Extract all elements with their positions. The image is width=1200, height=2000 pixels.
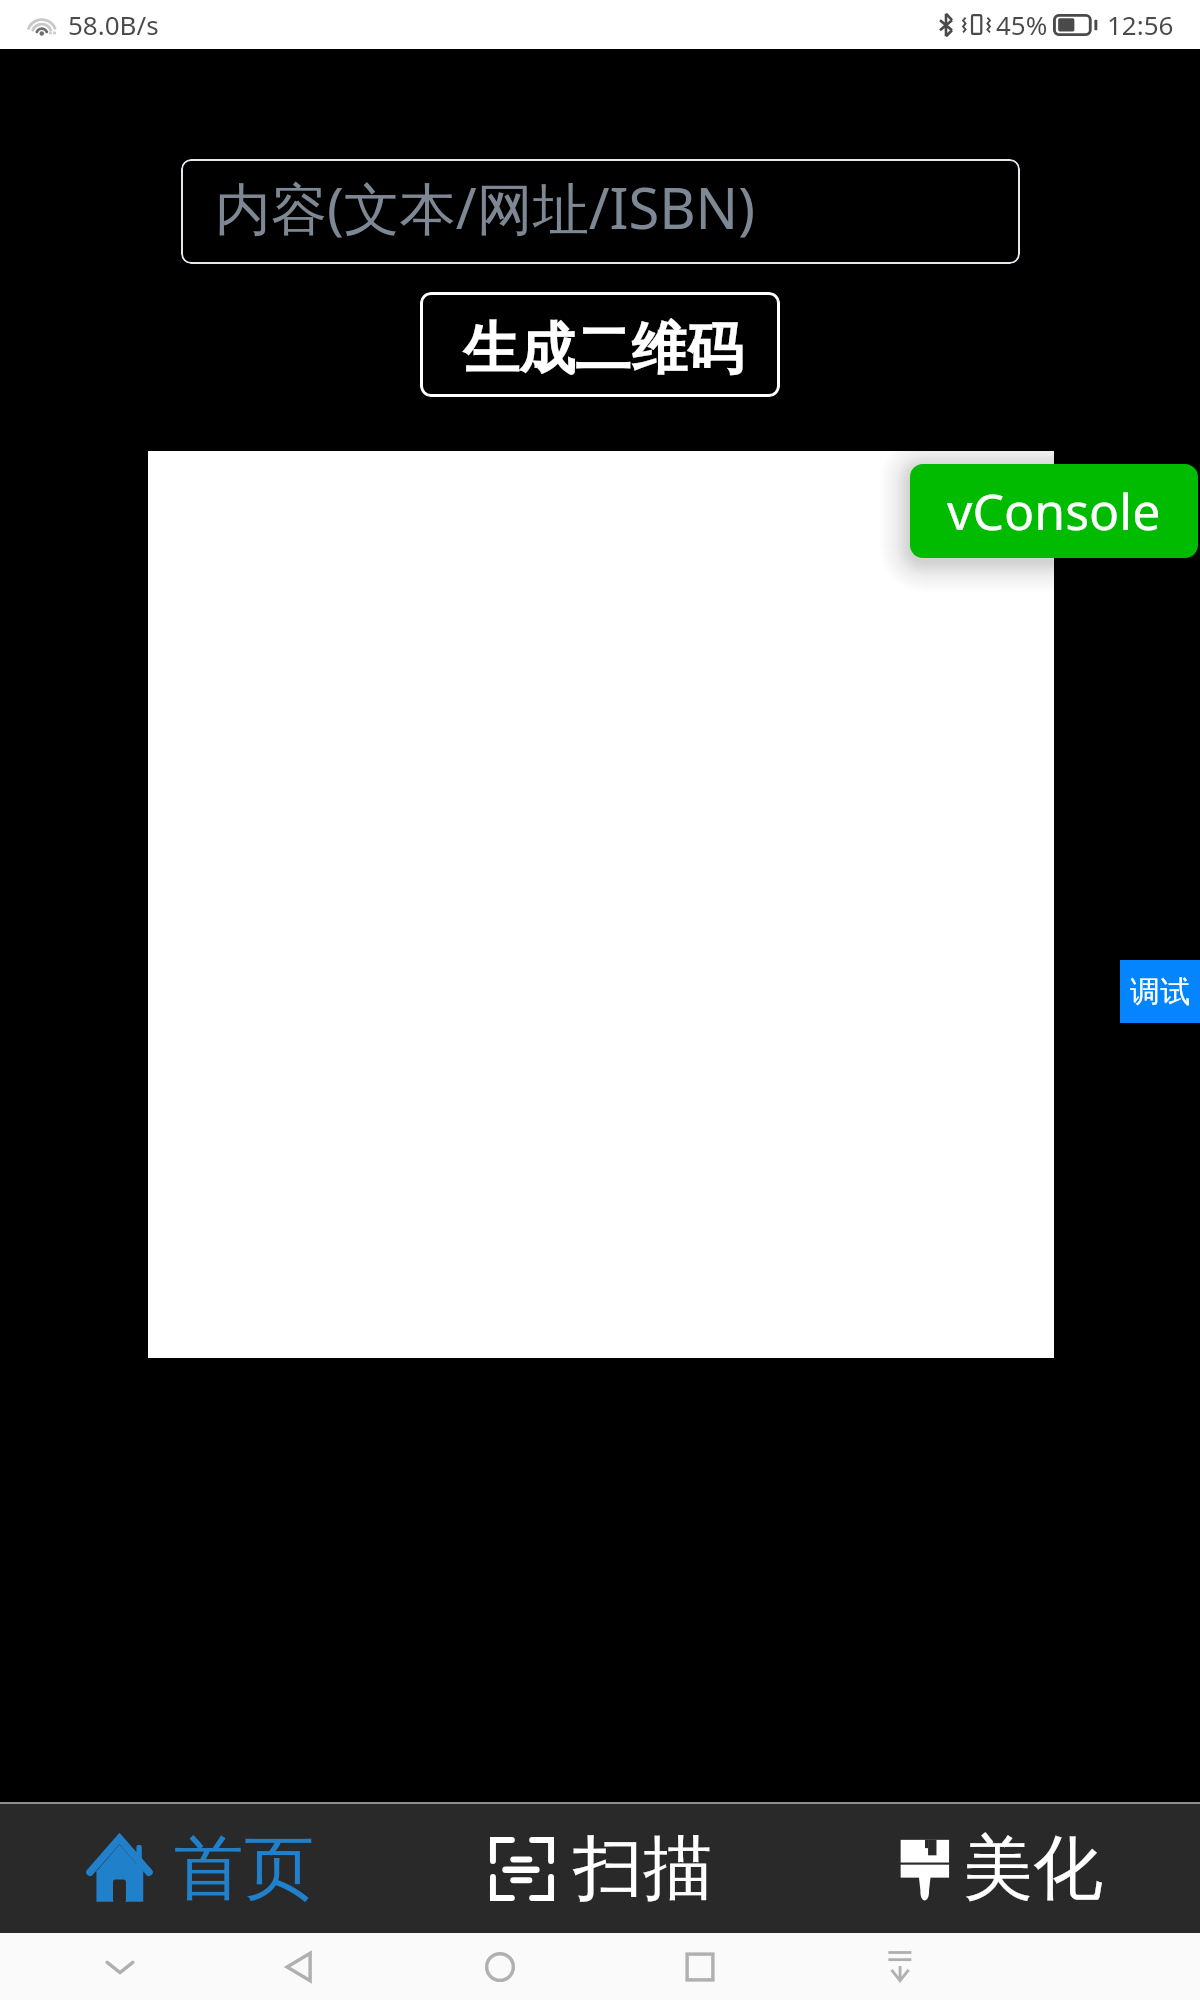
button[interactable]: 首页 xyxy=(0,1804,400,1933)
button[interactable]: Recents xyxy=(664,1933,736,2000)
button[interactable]: 内容(文本/网址/ISBN) xyxy=(181,159,1020,264)
button[interactable]: 扫描 xyxy=(400,1804,800,1933)
staticText: 45% xyxy=(996,7,1048,42)
staticText: 12:56 xyxy=(1107,7,1174,42)
button[interactable]: 生成二维码 xyxy=(420,292,780,397)
staticText: 内容(文本/网址/ISBN) xyxy=(215,169,755,245)
button[interactable]: 调试 xyxy=(1120,960,1200,1023)
button[interactable]: Back xyxy=(264,1933,336,2000)
button[interactable]: Home xyxy=(464,1933,536,2000)
staticText: 生成二维码 xyxy=(463,314,743,385)
staticText: 58.0B/s xyxy=(68,7,159,42)
button[interactable]: 美化 xyxy=(800,1804,1200,1933)
staticText: vConsole xyxy=(947,477,1161,545)
button[interactable]: vConsole xyxy=(910,464,1198,558)
staticText: 扫描 xyxy=(573,1825,713,1913)
staticText: 美化 xyxy=(963,1825,1103,1913)
staticText: 调试 xyxy=(1130,973,1190,1011)
staticText: 首页 xyxy=(174,1825,314,1913)
button[interactable]: Hide keyboard xyxy=(84,1933,156,2000)
button[interactable]: Pull down xyxy=(862,1933,934,2000)
